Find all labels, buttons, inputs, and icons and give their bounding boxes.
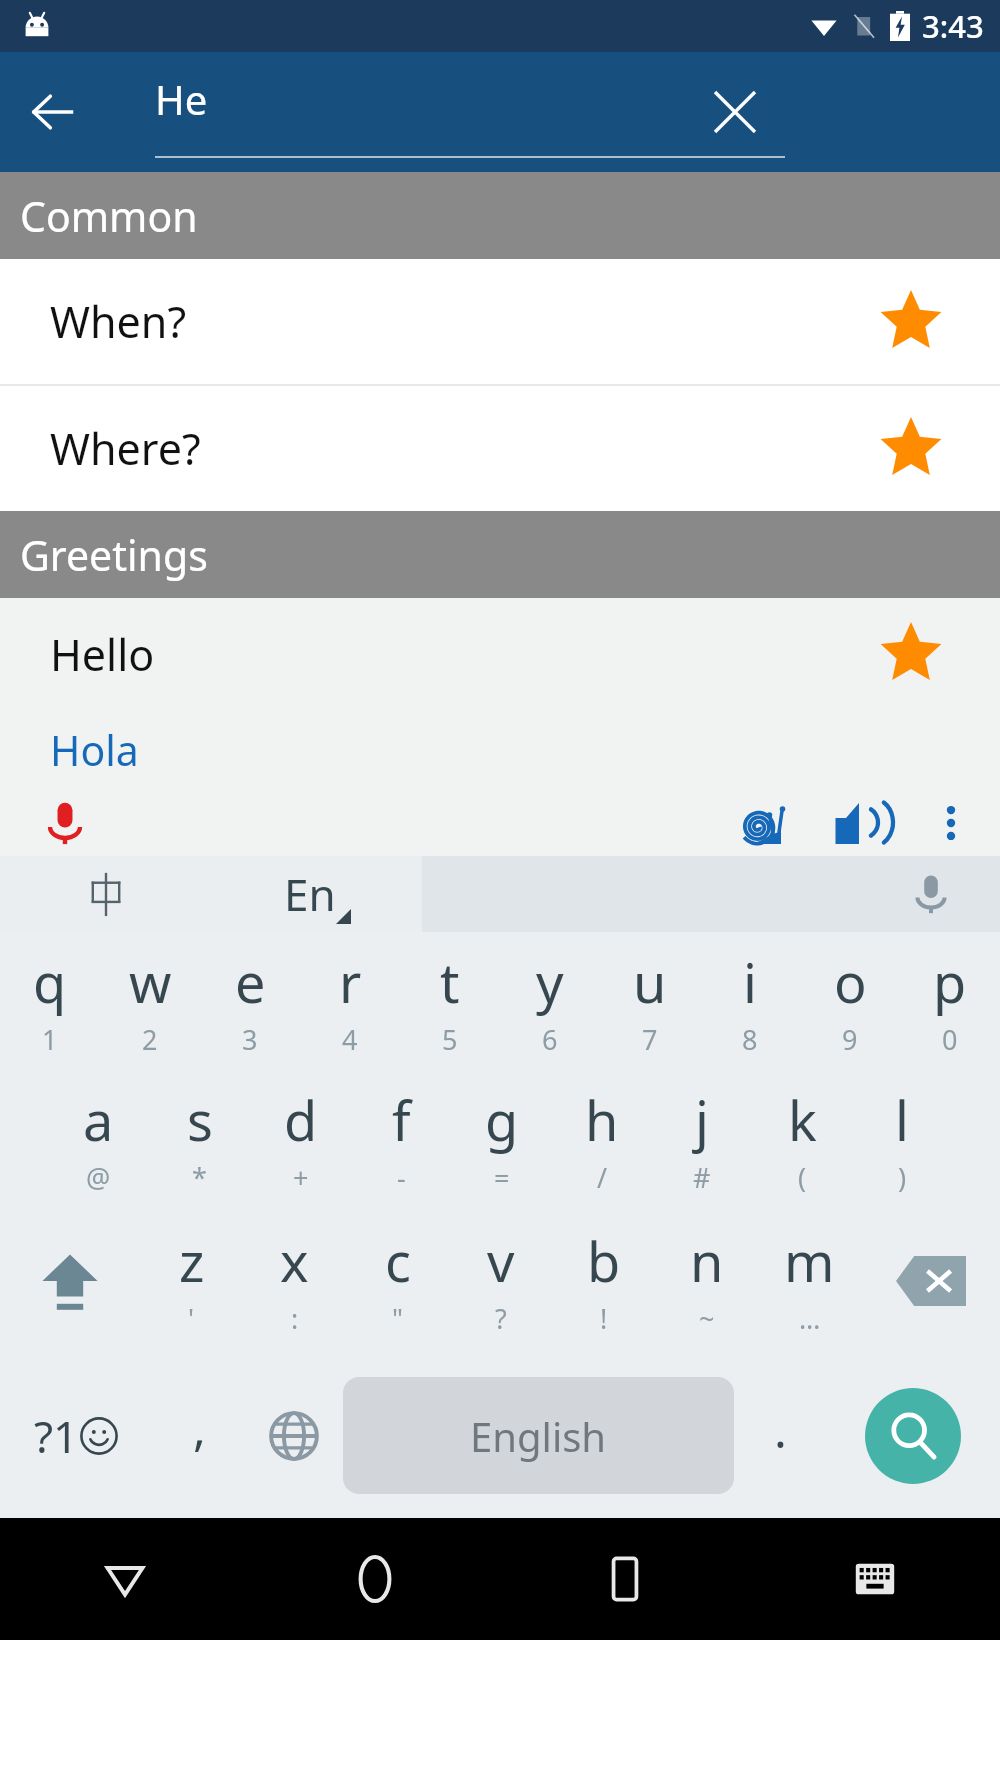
button[interactable]: Back	[20, 79, 86, 145]
staticText: 9	[842, 1021, 858, 1058]
button[interactable]: When?	[0, 259, 1000, 384]
button[interactable]: i	[700, 932, 800, 1070]
button[interactable]: Chinese input	[0, 856, 212, 932]
button[interactable]: Shift	[0, 1208, 140, 1353]
button[interactable]: d	[250, 1070, 351, 1208]
button[interactable]: x	[243, 1208, 346, 1353]
button[interactable]: Change language	[245, 1353, 343, 1518]
button[interactable]: .	[734, 1353, 826, 1518]
staticText: j	[695, 1083, 709, 1157]
button[interactable]: u	[600, 932, 700, 1070]
staticText: q	[33, 945, 67, 1019]
staticText: .	[774, 1397, 787, 1462]
button[interactable]: Greetings	[0, 511, 1000, 598]
button[interactable]: s	[149, 1070, 250, 1208]
staticText: r	[339, 945, 362, 1019]
button[interactable]: m	[758, 1208, 861, 1353]
staticText: 3:43	[922, 5, 984, 47]
staticText: c	[385, 1224, 411, 1298]
staticText: When?	[50, 292, 187, 351]
button[interactable]: Favorite When?	[872, 283, 950, 361]
button[interactable]: t	[400, 932, 500, 1070]
button[interactable]: Clear query	[700, 77, 770, 147]
button[interactable]: e	[200, 932, 300, 1070]
staticText: ~	[699, 1300, 715, 1337]
button[interactable]: j	[652, 1070, 752, 1208]
staticText: '	[188, 1300, 195, 1337]
staticText: p	[933, 945, 967, 1019]
staticText: b	[587, 1224, 621, 1298]
staticText: En	[284, 864, 336, 924]
staticText: s	[187, 1083, 213, 1157]
staticText: 2	[142, 1021, 158, 1058]
button[interactable]: n	[655, 1208, 758, 1353]
button[interactable]: Favorite Hello	[872, 615, 950, 693]
staticText: Greetings	[20, 527, 208, 583]
button[interactable]: Backspace	[861, 1208, 1000, 1353]
staticText: #	[693, 1159, 711, 1196]
button[interactable]: ,	[153, 1353, 245, 1518]
staticText: (	[798, 1159, 807, 1196]
staticText: k	[788, 1083, 817, 1157]
staticText: n	[690, 1224, 724, 1298]
staticText: :	[291, 1300, 299, 1337]
staticText: "	[392, 1300, 404, 1337]
button[interactable]: Back	[0, 1518, 250, 1640]
button[interactable]: En	[212, 856, 422, 932]
staticText: =	[494, 1159, 510, 1196]
button[interactable]: Record	[36, 794, 94, 852]
button[interactable]: f	[351, 1070, 452, 1208]
button[interactable]: Symbols and emoji	[0, 1353, 153, 1518]
staticText: )	[898, 1159, 907, 1196]
button[interactable]: o	[800, 932, 900, 1070]
staticText: He	[155, 72, 208, 126]
button[interactable]: Voice input	[422, 856, 1000, 932]
button[interactable]: Recent apps	[500, 1518, 750, 1640]
button[interactable]: Home	[250, 1518, 500, 1640]
staticText: t	[440, 945, 460, 1019]
staticText: 4	[342, 1021, 358, 1058]
staticText: f	[392, 1083, 411, 1157]
button[interactable]: Voice input	[904, 867, 958, 921]
button[interactable]: Play audio	[828, 792, 890, 854]
button[interactable]: Hello	[0, 598, 1000, 856]
staticText: ?	[495, 1300, 507, 1337]
staticText: English	[470, 1409, 607, 1463]
button[interactable]: Common	[0, 172, 1000, 259]
button[interactable]: c	[346, 1208, 449, 1353]
button[interactable]: More options	[924, 796, 978, 850]
button[interactable]: English	[343, 1377, 734, 1494]
button[interactable]: v	[449, 1208, 552, 1353]
button[interactable]: z	[140, 1208, 243, 1353]
staticText: m	[784, 1224, 835, 1298]
staticText: i	[743, 945, 757, 1019]
button[interactable]: a	[48, 1070, 149, 1208]
staticText: y	[536, 945, 564, 1019]
staticText: 5	[442, 1021, 458, 1058]
button[interactable]: b	[552, 1208, 655, 1353]
button[interactable]: w	[100, 932, 200, 1070]
staticText: 1	[42, 1021, 58, 1058]
staticText: @	[86, 1159, 111, 1196]
button[interactable]: y	[500, 932, 600, 1070]
staticText: -	[397, 1159, 406, 1196]
staticText: 7	[642, 1021, 658, 1058]
button[interactable]: l	[852, 1070, 952, 1208]
button[interactable]: h	[552, 1070, 652, 1208]
staticText: Hola	[50, 722, 139, 778]
button[interactable]: Slow speech	[734, 792, 796, 854]
button[interactable]: Where?	[0, 386, 1000, 511]
button[interactable]: q	[0, 932, 100, 1070]
button[interactable]: Switch keyboard	[750, 1518, 1000, 1640]
staticText: /	[597, 1159, 608, 1196]
button[interactable]: p	[900, 932, 1000, 1070]
staticText: +	[293, 1159, 309, 1196]
button[interactable]: r	[300, 932, 400, 1070]
staticText: 0	[942, 1021, 958, 1058]
staticText: 8	[742, 1021, 758, 1058]
button[interactable]: Favorite Where?	[872, 410, 950, 488]
button[interactable]: Search	[826, 1353, 1000, 1518]
button[interactable]: k	[752, 1070, 852, 1208]
staticText: 6	[542, 1021, 558, 1058]
button[interactable]: g	[452, 1070, 552, 1208]
